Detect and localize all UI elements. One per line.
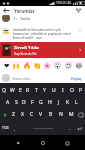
staticText: Yorumlar — [14, 8, 35, 14]
button[interactable]: . — [66, 121, 74, 135]
staticText: Y — [43, 87, 46, 94]
button[interactable]: T — [32, 84, 40, 96]
staticText: 10% 01:46 — [56, 1, 72, 5]
button[interactable]: Backspace — [76, 108, 85, 121]
button[interactable]: Share — [72, 6, 85, 15]
staticText: W — [10, 87, 15, 94]
button[interactable]: G — [36, 96, 45, 108]
button[interactable]: Home — [36, 136, 50, 150]
button[interactable]: H — [45, 96, 54, 108]
staticText: footballislx Bonusbood en çok kazanırsın… — [13, 27, 76, 40]
staticText: Zirveli Yıldız — [14, 45, 40, 51]
staticText: T — [35, 87, 38, 94]
button[interactable]: M — [66, 108, 76, 121]
button[interactable]: Back — [11, 136, 25, 150]
button[interactable]: 🌸 — [43, 61, 52, 70]
staticText: 3 s — [13, 17, 17, 21]
button[interactable]: K — [63, 96, 72, 108]
button[interactable]: Recent apps — [60, 136, 74, 150]
button[interactable]: I — [58, 84, 67, 96]
button[interactable]: R — [24, 84, 32, 96]
button[interactable]: 😍 — [64, 61, 73, 70]
button[interactable]: C — [27, 108, 36, 121]
button[interactable]: A — [4, 96, 12, 108]
staticText: Yanıtla — [20, 17, 30, 21]
staticText: 👏 — [33, 62, 42, 70]
button[interactable]: V — [36, 108, 46, 121]
button[interactable]: 👏 — [33, 61, 42, 70]
staticText: K — [66, 99, 70, 106]
button[interactable]: J — [54, 96, 63, 108]
button[interactable]: 🙌 — [12, 61, 21, 70]
staticText: Yorum ekle... — [12, 76, 33, 81]
staticText: F — [31, 99, 34, 106]
button[interactable]: X — [18, 108, 27, 121]
staticText: C — [30, 111, 34, 118]
staticText: O — [70, 87, 74, 94]
staticText: U — [52, 87, 56, 94]
button[interactable]: D — [20, 96, 28, 108]
button[interactable]: Paylaş — [70, 74, 83, 83]
staticText: Paylaş — [71, 76, 82, 81]
button[interactable]: Shift — [0, 108, 9, 121]
staticText: H — [48, 99, 52, 106]
button[interactable]: ❤️ — [2, 61, 11, 70]
staticText: R — [26, 87, 30, 94]
button[interactable]: O — [67, 84, 76, 96]
button[interactable]: U — [49, 84, 58, 96]
button[interactable]: L — [72, 96, 81, 108]
button[interactable]: Q — [0, 84, 8, 96]
staticText: J — [58, 99, 60, 106]
staticText: L — [75, 99, 78, 106]
staticText: Rap Sizerde Gir — [14, 52, 37, 56]
staticText: 😮 — [54, 62, 61, 70]
button[interactable]: N — [56, 108, 66, 121]
staticText: 🔥 — [23, 62, 32, 70]
button[interactable]: Zirveli Yıldız — [0, 42, 85, 58]
staticText: G — [39, 99, 43, 106]
staticText: V — [39, 111, 43, 118]
staticText: 😍 — [65, 62, 72, 70]
button[interactable]: F — [28, 96, 36, 108]
staticText: 🌸 — [43, 62, 52, 70]
button[interactable]: ?123 — [0, 121, 11, 135]
staticText: N — [59, 111, 63, 118]
staticText: ?123 — [2, 126, 9, 130]
button[interactable]: Y — [40, 84, 49, 96]
staticText: 😂 — [75, 62, 83, 70]
staticText: S — [15, 99, 18, 106]
staticText: 🙌 — [12, 62, 21, 70]
staticText: M — [69, 111, 74, 118]
button[interactable]: , — [11, 121, 19, 135]
staticText: B — [49, 111, 53, 118]
button[interactable]: E — [16, 84, 24, 96]
staticText: Z — [12, 111, 15, 118]
button[interactable]: 😮 — [53, 61, 62, 70]
button[interactable]: W — [8, 84, 16, 96]
button[interactable]: S — [12, 96, 20, 108]
staticText: Q — [2, 87, 6, 94]
staticText: I — [62, 87, 64, 94]
button[interactable]: 🔥 — [23, 61, 32, 70]
button[interactable]: Enter — [74, 121, 85, 135]
staticText: D — [22, 99, 26, 106]
staticText: , — [14, 126, 16, 131]
staticText: A — [6, 99, 10, 106]
button[interactable]: B — [46, 108, 56, 121]
staticText: P — [79, 87, 83, 94]
button[interactable]: P — [76, 84, 85, 96]
staticText: X — [21, 111, 24, 118]
button[interactable]: 😂 — [74, 61, 83, 70]
staticText: E — [19, 87, 22, 94]
button[interactable]: Space — [19, 121, 66, 135]
staticText: . — [69, 126, 71, 131]
button[interactable]: Like — [77, 27, 83, 33]
staticText: ❤️ — [4, 62, 10, 70]
button[interactable]: Z — [9, 108, 18, 121]
button[interactable]: Back — [0, 6, 13, 15]
